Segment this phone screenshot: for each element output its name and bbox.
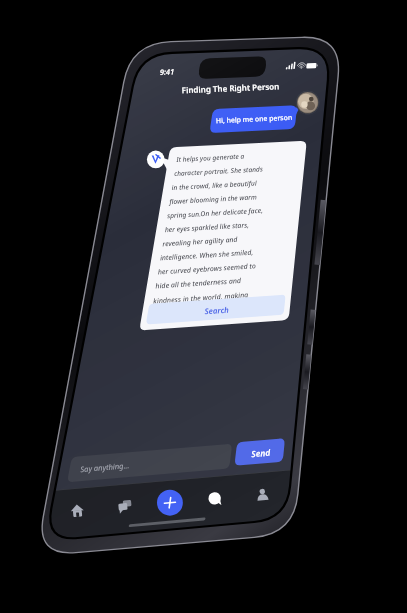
button[interactable]: Finding The Right Person chat screen (0, 0, 407, 613)
